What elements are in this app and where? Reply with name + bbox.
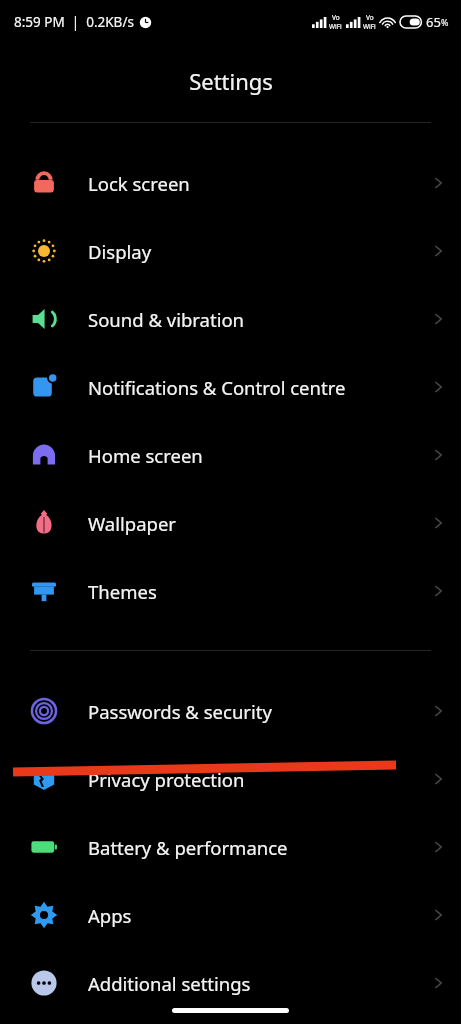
button[interactable]: Lock screen [0,149,461,217]
staticText: 65 [426,13,441,31]
staticText: Notifications & Control centre [88,375,415,400]
staticText: Passwords & security [88,699,415,724]
staticText: Sound & vibration [88,307,415,332]
staticText: Apps [88,903,415,928]
staticText: WiFi [329,22,342,31]
staticText: 8:59 PM | 0.2KB/s [14,13,134,31]
button[interactable]: Battery & performance [0,813,461,881]
staticText: Lock screen [88,171,415,196]
button[interactable]: Apps [0,881,461,949]
button[interactable]: Additional settings [0,949,461,1017]
staticText: Settings [189,66,273,96]
button[interactable]: Wallpaper [0,489,461,557]
button[interactable]: Home screen [0,421,461,489]
staticText: Themes [88,579,415,604]
staticText: Home screen [88,443,415,468]
staticText: WiFi [363,22,376,31]
button[interactable]: Privacy protection [0,745,461,813]
staticText: Display [88,239,415,264]
button[interactable]: Themes [0,557,461,625]
staticText: Wallpaper [88,511,415,536]
staticText: Vo [332,13,340,22]
staticText: Additional settings [88,971,415,996]
staticText: Privacy protection [88,767,415,792]
staticText: % [441,16,449,28]
button[interactable]: Passwords & security [0,677,461,745]
button[interactable]: Display [0,217,461,285]
button[interactable]: Notifications & Control centre [0,353,461,421]
staticText: Vo [366,13,374,22]
button[interactable]: Sound & vibration [0,285,461,353]
staticText: Battery & performance [88,835,415,860]
